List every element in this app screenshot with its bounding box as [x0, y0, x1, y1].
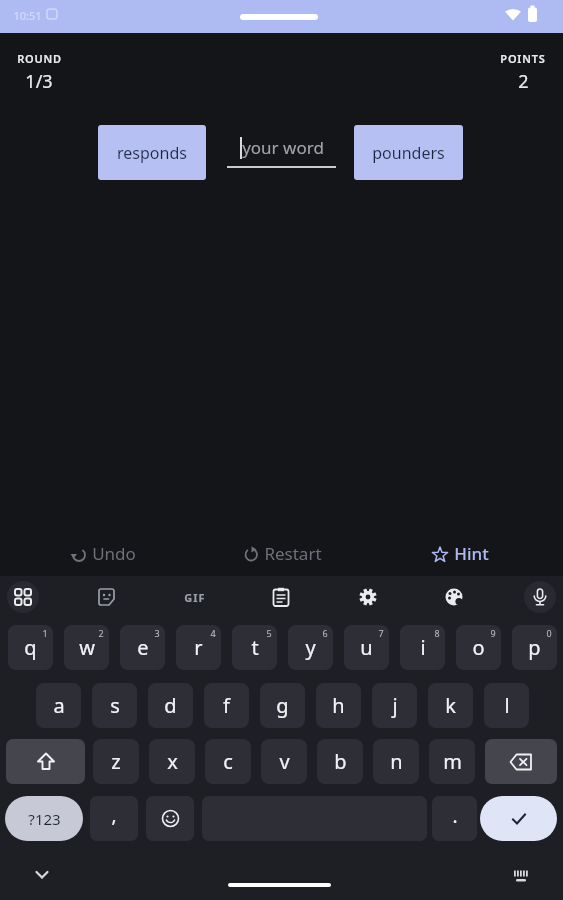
staticText: 4: [210, 627, 216, 639]
staticText: k: [445, 692, 456, 719]
staticText: 6: [322, 627, 328, 639]
button[interactable]: n: [373, 739, 419, 784]
button[interactable]: p: [512, 625, 557, 670]
button[interactable]: Hint: [400, 538, 520, 568]
staticText: p: [528, 634, 541, 661]
button[interactable]: responds: [98, 125, 206, 180]
staticText: f: [223, 692, 230, 719]
button[interactable]: k: [428, 683, 473, 728]
button[interactable]: o: [456, 625, 501, 670]
staticText: c: [223, 748, 233, 775]
staticText: 2: [518, 69, 529, 94]
staticText: h: [332, 692, 345, 719]
button[interactable]: [352, 581, 384, 613]
staticText: t: [251, 634, 259, 661]
button[interactable]: Restart: [222, 538, 342, 568]
staticText: u: [360, 634, 373, 661]
button[interactable]: f: [204, 683, 249, 728]
button[interactable]: j: [372, 683, 417, 728]
staticText: s: [110, 692, 120, 719]
staticText: 2: [98, 627, 104, 639]
button[interactable]: ?123: [5, 796, 83, 841]
button[interactable]: z: [93, 739, 139, 784]
button[interactable]: ,: [90, 796, 138, 841]
button[interactable]: b: [317, 739, 363, 784]
staticText: responds: [117, 142, 187, 164]
button[interactable]: l: [484, 683, 529, 728]
staticText: m: [443, 748, 462, 775]
button[interactable]: [6, 739, 85, 784]
staticText: a: [53, 692, 65, 719]
button[interactable]: a: [36, 683, 81, 728]
staticText: l: [504, 692, 510, 719]
button[interactable]: r: [176, 625, 221, 670]
staticText: y: [305, 634, 316, 661]
staticText: z: [111, 748, 121, 775]
button[interactable]: e: [120, 625, 165, 670]
staticText: GIF: [184, 590, 206, 605]
staticText: n: [390, 748, 403, 775]
button[interactable]: pounders: [354, 125, 463, 180]
staticText: b: [334, 748, 347, 775]
staticText: ?123: [28, 809, 61, 829]
staticText: 9: [490, 627, 496, 639]
staticText: 1: [42, 627, 48, 639]
button[interactable]: .: [432, 796, 477, 841]
staticText: Undo: [92, 542, 136, 565]
staticText: g: [276, 692, 289, 719]
button[interactable]: i: [400, 625, 445, 670]
button[interactable]: GIF: [179, 581, 211, 613]
button[interactable]: [480, 796, 557, 841]
button[interactable]: Undo: [43, 538, 163, 568]
staticText: x: [167, 748, 178, 775]
button[interactable]: [228, 883, 331, 887]
button[interactable]: [265, 581, 297, 613]
staticText: d: [164, 692, 177, 719]
staticText: ,: [111, 802, 117, 828]
button[interactable]: [91, 581, 123, 613]
button[interactable]: x: [149, 739, 195, 784]
button[interactable]: h: [316, 683, 361, 728]
staticText: .: [452, 803, 458, 829]
button[interactable]: c: [205, 739, 251, 784]
staticText: o: [472, 634, 485, 661]
staticText: Hint: [454, 542, 489, 565]
button[interactable]: d: [148, 683, 193, 728]
button[interactable]: [7, 581, 39, 613]
button[interactable]: [34, 868, 50, 882]
staticText: 3: [154, 627, 160, 639]
staticText: i: [420, 634, 426, 661]
button[interactable]: [512, 869, 530, 885]
staticText: your word: [242, 136, 324, 159]
staticText: POINTS: [500, 51, 546, 66]
staticText: w: [79, 634, 95, 661]
button[interactable]: m: [429, 739, 475, 784]
staticText: 0: [546, 627, 552, 639]
button[interactable]: s: [92, 683, 137, 728]
button[interactable]: u: [344, 625, 389, 670]
button[interactable]: g: [260, 683, 305, 728]
button[interactable]: [146, 796, 194, 841]
button[interactable]: w: [64, 625, 109, 670]
button[interactable]: v: [261, 739, 307, 784]
staticText: v: [279, 748, 290, 775]
button[interactable]: [485, 739, 557, 784]
staticText: pounders: [372, 142, 445, 164]
staticText: 7: [378, 627, 384, 639]
button[interactable]: y: [288, 625, 333, 670]
staticText: 8: [434, 627, 440, 639]
staticText: ROUND: [17, 51, 62, 66]
staticText: r: [194, 634, 203, 661]
button[interactable]: q: [8, 625, 53, 670]
staticText: j: [392, 692, 398, 719]
staticText: Restart: [264, 542, 322, 565]
staticText: 5: [266, 627, 272, 639]
button[interactable]: your word: [227, 125, 336, 180]
button[interactable]: [524, 581, 556, 613]
staticText: e: [137, 634, 149, 661]
staticText: 10:51: [13, 8, 42, 23]
button[interactable]: [438, 581, 470, 613]
staticText: 1/3: [25, 69, 53, 94]
button[interactable]: t: [232, 625, 277, 670]
